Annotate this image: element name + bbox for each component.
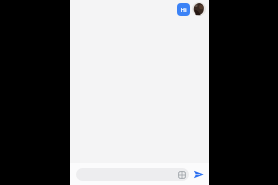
button[interactable]: Send <box>192 168 205 181</box>
button[interactable]: Hi <box>177 3 190 16</box>
staticText: Hi <box>180 6 187 14</box>
button[interactable]: Stickers <box>76 168 189 181</box>
button[interactable]: Stickers <box>178 171 186 179</box>
button[interactable]: Profile photo <box>192 2 206 16</box>
